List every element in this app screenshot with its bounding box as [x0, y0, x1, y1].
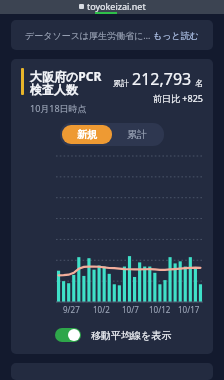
staticText: 累計 — [127, 128, 147, 141]
staticText: 10/17 — [178, 304, 200, 315]
staticText: 10/12 — [149, 304, 171, 315]
staticText: もっと読む — [153, 30, 199, 41]
button[interactable]: 累計 — [112, 125, 162, 144]
staticText: 10月18日時点 — [30, 102, 87, 114]
staticText: 前日比 +825 — [153, 92, 203, 104]
staticText: データソースは厚生労働省に… — [25, 29, 151, 41]
staticText: toyokeizai.net — [87, 0, 146, 12]
staticText: 212,793 — [132, 68, 192, 90]
button[interactable] — [53, 326, 83, 344]
staticText: 10/2 — [93, 304, 110, 315]
staticText: 累計 — [113, 78, 129, 88]
staticText: 大阪府のPCR検査人数 — [30, 68, 111, 98]
staticText: 新規 — [77, 128, 97, 141]
staticText: 移動平均線を表示 — [91, 329, 172, 342]
staticText: 10/7 — [122, 304, 139, 315]
staticText: 名 — [195, 78, 203, 88]
button[interactable]: データソースは厚生労働省に… — [11, 20, 213, 50]
staticText: 9/27 — [63, 304, 80, 315]
button[interactable]: 新規 — [62, 125, 112, 144]
